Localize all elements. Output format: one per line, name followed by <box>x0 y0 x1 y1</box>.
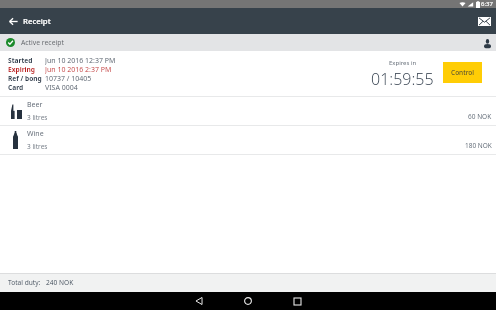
staticText: 01:59:55 <box>371 68 434 90</box>
staticText: 60 NOK <box>468 112 492 121</box>
staticText: Receipt <box>23 16 51 27</box>
staticText: Wine <box>27 129 44 139</box>
staticText: Expires in <box>389 59 417 67</box>
button[interactable]: Back <box>190 292 208 310</box>
button[interactable]: Control <box>443 62 482 83</box>
button[interactable]: Wine <box>0 126 496 154</box>
staticText: VISA 0004 <box>45 83 78 92</box>
staticText: Ref / bong <box>8 74 42 83</box>
staticText: Total duty: <box>8 278 41 287</box>
button[interactable]: Recent apps <box>288 292 306 310</box>
staticText: Jun 10 2016 12:37 PM <box>45 56 116 65</box>
staticText: 240 NOK <box>46 278 74 287</box>
button[interactable]: Back <box>4 12 22 30</box>
button[interactable]: Home <box>239 292 257 310</box>
staticText: Expiring <box>8 65 36 74</box>
staticText: 6:37 <box>481 0 493 8</box>
staticText: Control <box>451 68 475 77</box>
button[interactable]: Email receipt <box>475 12 493 30</box>
staticText: Jun 10 2016 2:37 PM <box>45 65 112 74</box>
staticText: Started <box>8 56 33 65</box>
staticText: Active receipt <box>21 38 64 47</box>
staticText: 3 litres <box>27 113 48 122</box>
staticText: Card <box>8 83 24 92</box>
staticText: Beer <box>27 100 43 110</box>
button[interactable]: Account <box>480 36 494 50</box>
staticText: 10737 / 10405 <box>45 74 92 83</box>
button[interactable]: Beer <box>0 97 496 125</box>
staticText: 3 litres <box>27 142 48 151</box>
staticText: 180 NOK <box>465 141 492 150</box>
